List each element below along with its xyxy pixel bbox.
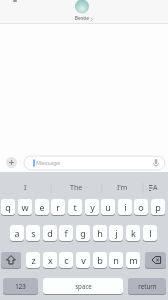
staticText: i (124, 201, 127, 213)
staticText: a (14, 227, 20, 239)
staticText: b (97, 254, 103, 266)
button[interactable] (0, 0, 168, 23)
button[interactable]: r (51, 199, 65, 215)
staticText: y (90, 201, 95, 213)
button[interactable] (1, 252, 21, 268)
staticText: h (97, 227, 103, 239)
staticText: return (138, 282, 157, 290)
button[interactable]: q (1, 199, 15, 215)
staticText: r (56, 201, 60, 213)
button[interactable]: d (43, 225, 57, 241)
button[interactable]: b (93, 252, 107, 268)
button[interactable]: j (109, 225, 123, 241)
button[interactable]: I (0, 179, 51, 197)
button[interactable]: o (134, 199, 148, 215)
button[interactable]: m (126, 252, 140, 268)
staticText: Message (36, 159, 61, 167)
staticText: m (129, 254, 138, 266)
staticText: I'm (117, 183, 128, 193)
button[interactable]: c (59, 252, 73, 268)
staticText: t (73, 201, 77, 213)
staticText: q (5, 201, 11, 213)
button[interactable]: h (93, 225, 107, 241)
staticText: u (105, 201, 111, 213)
staticText: A (153, 183, 158, 193)
button[interactable]: The (51, 179, 102, 197)
staticText: e (39, 201, 45, 213)
button[interactable]: 123 (3, 278, 38, 294)
button[interactable]: t (68, 199, 82, 215)
staticText: k (131, 227, 136, 239)
staticText: w (21, 201, 29, 213)
button[interactable]: y (85, 199, 99, 215)
staticText: d (47, 227, 53, 239)
button[interactable]: n (109, 252, 123, 268)
staticText: I (24, 183, 27, 193)
button[interactable]: l (143, 225, 157, 241)
staticText: 123 (15, 282, 26, 290)
button[interactable]: s (26, 225, 40, 241)
staticText: Bestie (70, 15, 94, 23)
staticText: x (48, 254, 53, 266)
button[interactable]: g (76, 225, 90, 241)
staticText: The (70, 183, 83, 193)
button[interactable]: I'm (102, 179, 143, 197)
staticText: g (80, 227, 86, 239)
button[interactable]: v (76, 252, 90, 268)
button[interactable] (6, 157, 17, 168)
staticText: v (81, 254, 86, 266)
button[interactable]: p (151, 199, 165, 215)
button[interactable]: z (26, 252, 40, 268)
button[interactable]: space (43, 278, 123, 294)
staticText: f (64, 227, 68, 239)
button[interactable] (24, 156, 165, 170)
button[interactable]: x (43, 252, 57, 268)
button[interactable]: return (128, 278, 166, 294)
button[interactable]: f (59, 225, 73, 241)
button[interactable]: a (10, 225, 24, 241)
staticText: s (31, 227, 36, 239)
button[interactable]: k (126, 225, 140, 241)
staticText: j (115, 227, 118, 239)
button[interactable]: e (35, 199, 49, 215)
button[interactable] (145, 252, 166, 268)
staticText: n (113, 254, 119, 266)
button[interactable]: w (18, 199, 32, 215)
button[interactable]: i (118, 199, 132, 215)
staticText: o (138, 201, 144, 213)
button[interactable]: u (101, 199, 115, 215)
staticText: p (155, 201, 161, 213)
staticText: space (75, 282, 92, 290)
staticText: l (149, 227, 152, 239)
staticText: z (31, 254, 36, 266)
staticText: c (64, 254, 69, 266)
